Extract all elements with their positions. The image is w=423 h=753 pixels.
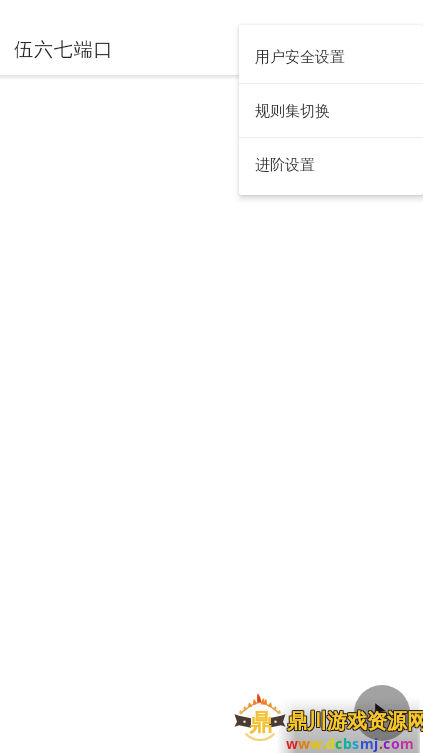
staticText: 鼎川游戏资源网 (287, 710, 423, 735)
button[interactable]: Add (354, 685, 410, 741)
button[interactable]: 进阶设置 (239, 138, 423, 191)
staticText: c (383, 734, 391, 753)
staticText: m (400, 734, 414, 753)
staticText: 鼎川游戏资源网 (287, 708, 423, 733)
staticText: w (286, 734, 298, 753)
staticText: b (343, 734, 352, 753)
staticText: j (374, 734, 379, 753)
staticText: 鼎川游戏资源网 (287, 709, 423, 734)
staticText: 鼎川游戏资源网 (288, 710, 423, 735)
staticText: 进阶设置 (255, 156, 315, 175)
staticText: 鼎川游戏资源网 (286, 708, 423, 733)
staticText: 鼎川游戏资源网 (286, 710, 423, 735)
staticText: 规则集切换 (255, 102, 330, 121)
staticText: s (352, 734, 360, 753)
staticText: . (322, 734, 326, 753)
staticText: 鼎川游戏资源网 (286, 709, 423, 734)
staticText: m (360, 734, 374, 753)
button[interactable]: 规则集切换 (239, 84, 423, 137)
button[interactable]: 用户安全设置 (239, 29, 423, 83)
staticText: w (310, 734, 322, 753)
staticText: . (379, 734, 383, 753)
staticText: 伍六七端口 (14, 38, 114, 62)
staticText: 鼎川游戏资源网 (288, 708, 423, 733)
staticText: c (335, 734, 343, 753)
staticText: 鼎川游戏资源网 (288, 709, 423, 734)
staticText: o (391, 734, 400, 753)
staticText: d (326, 734, 335, 753)
staticText: w (298, 734, 310, 753)
staticText: 鼎 (249, 708, 272, 735)
staticText: 用户安全设置 (255, 48, 345, 67)
